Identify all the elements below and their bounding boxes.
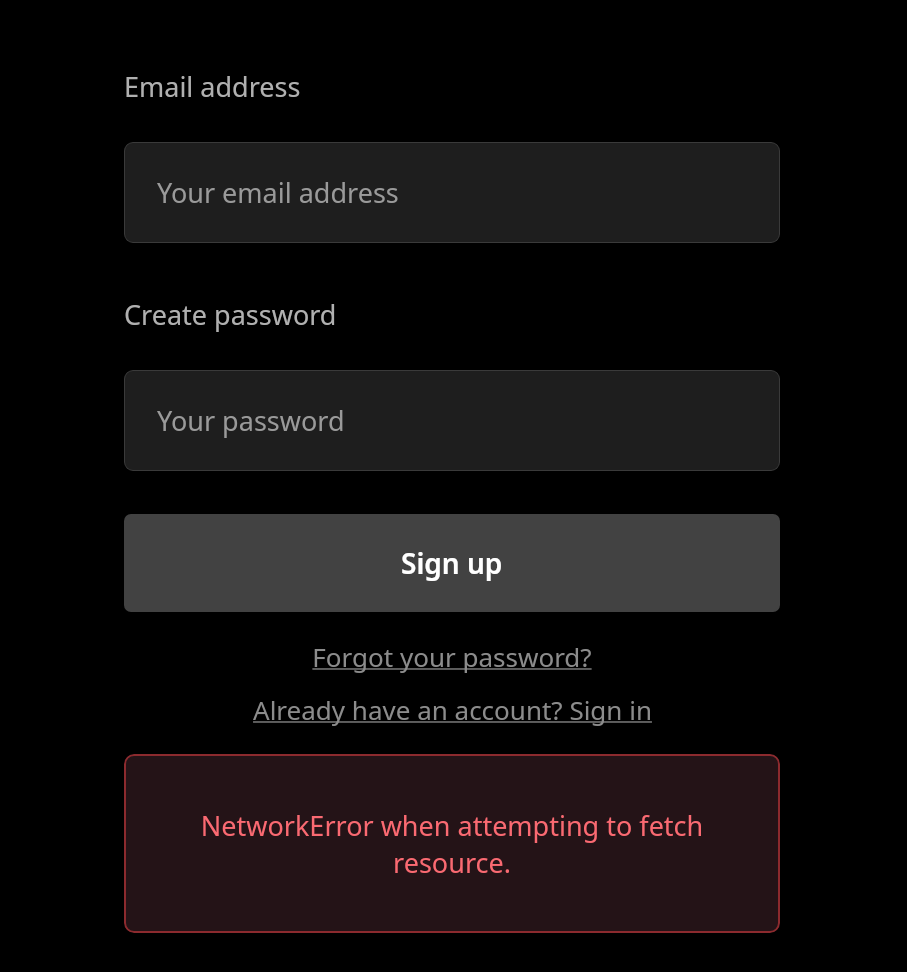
button[interactable]: Sign up bbox=[124, 514, 780, 612]
staticText: Create password bbox=[124, 296, 337, 333]
button[interactable]: Forgot your password? bbox=[124, 639, 780, 674]
staticText: Email address bbox=[124, 68, 301, 105]
button[interactable]: Your email address bbox=[124, 142, 780, 243]
other: Error message bbox=[124, 754, 780, 933]
staticText: Sign up bbox=[401, 544, 503, 582]
button[interactable]: Your password bbox=[124, 370, 780, 471]
staticText: Forgot your password? bbox=[312, 639, 592, 674]
staticText: Your email address bbox=[157, 174, 399, 211]
button[interactable]: Already have an account? Sign in bbox=[124, 692, 780, 727]
staticText: Already have an account? Sign in bbox=[253, 692, 652, 727]
staticText: NetworkError when attempting to fetch re… bbox=[148, 807, 756, 881]
staticText: Your password bbox=[157, 402, 345, 439]
